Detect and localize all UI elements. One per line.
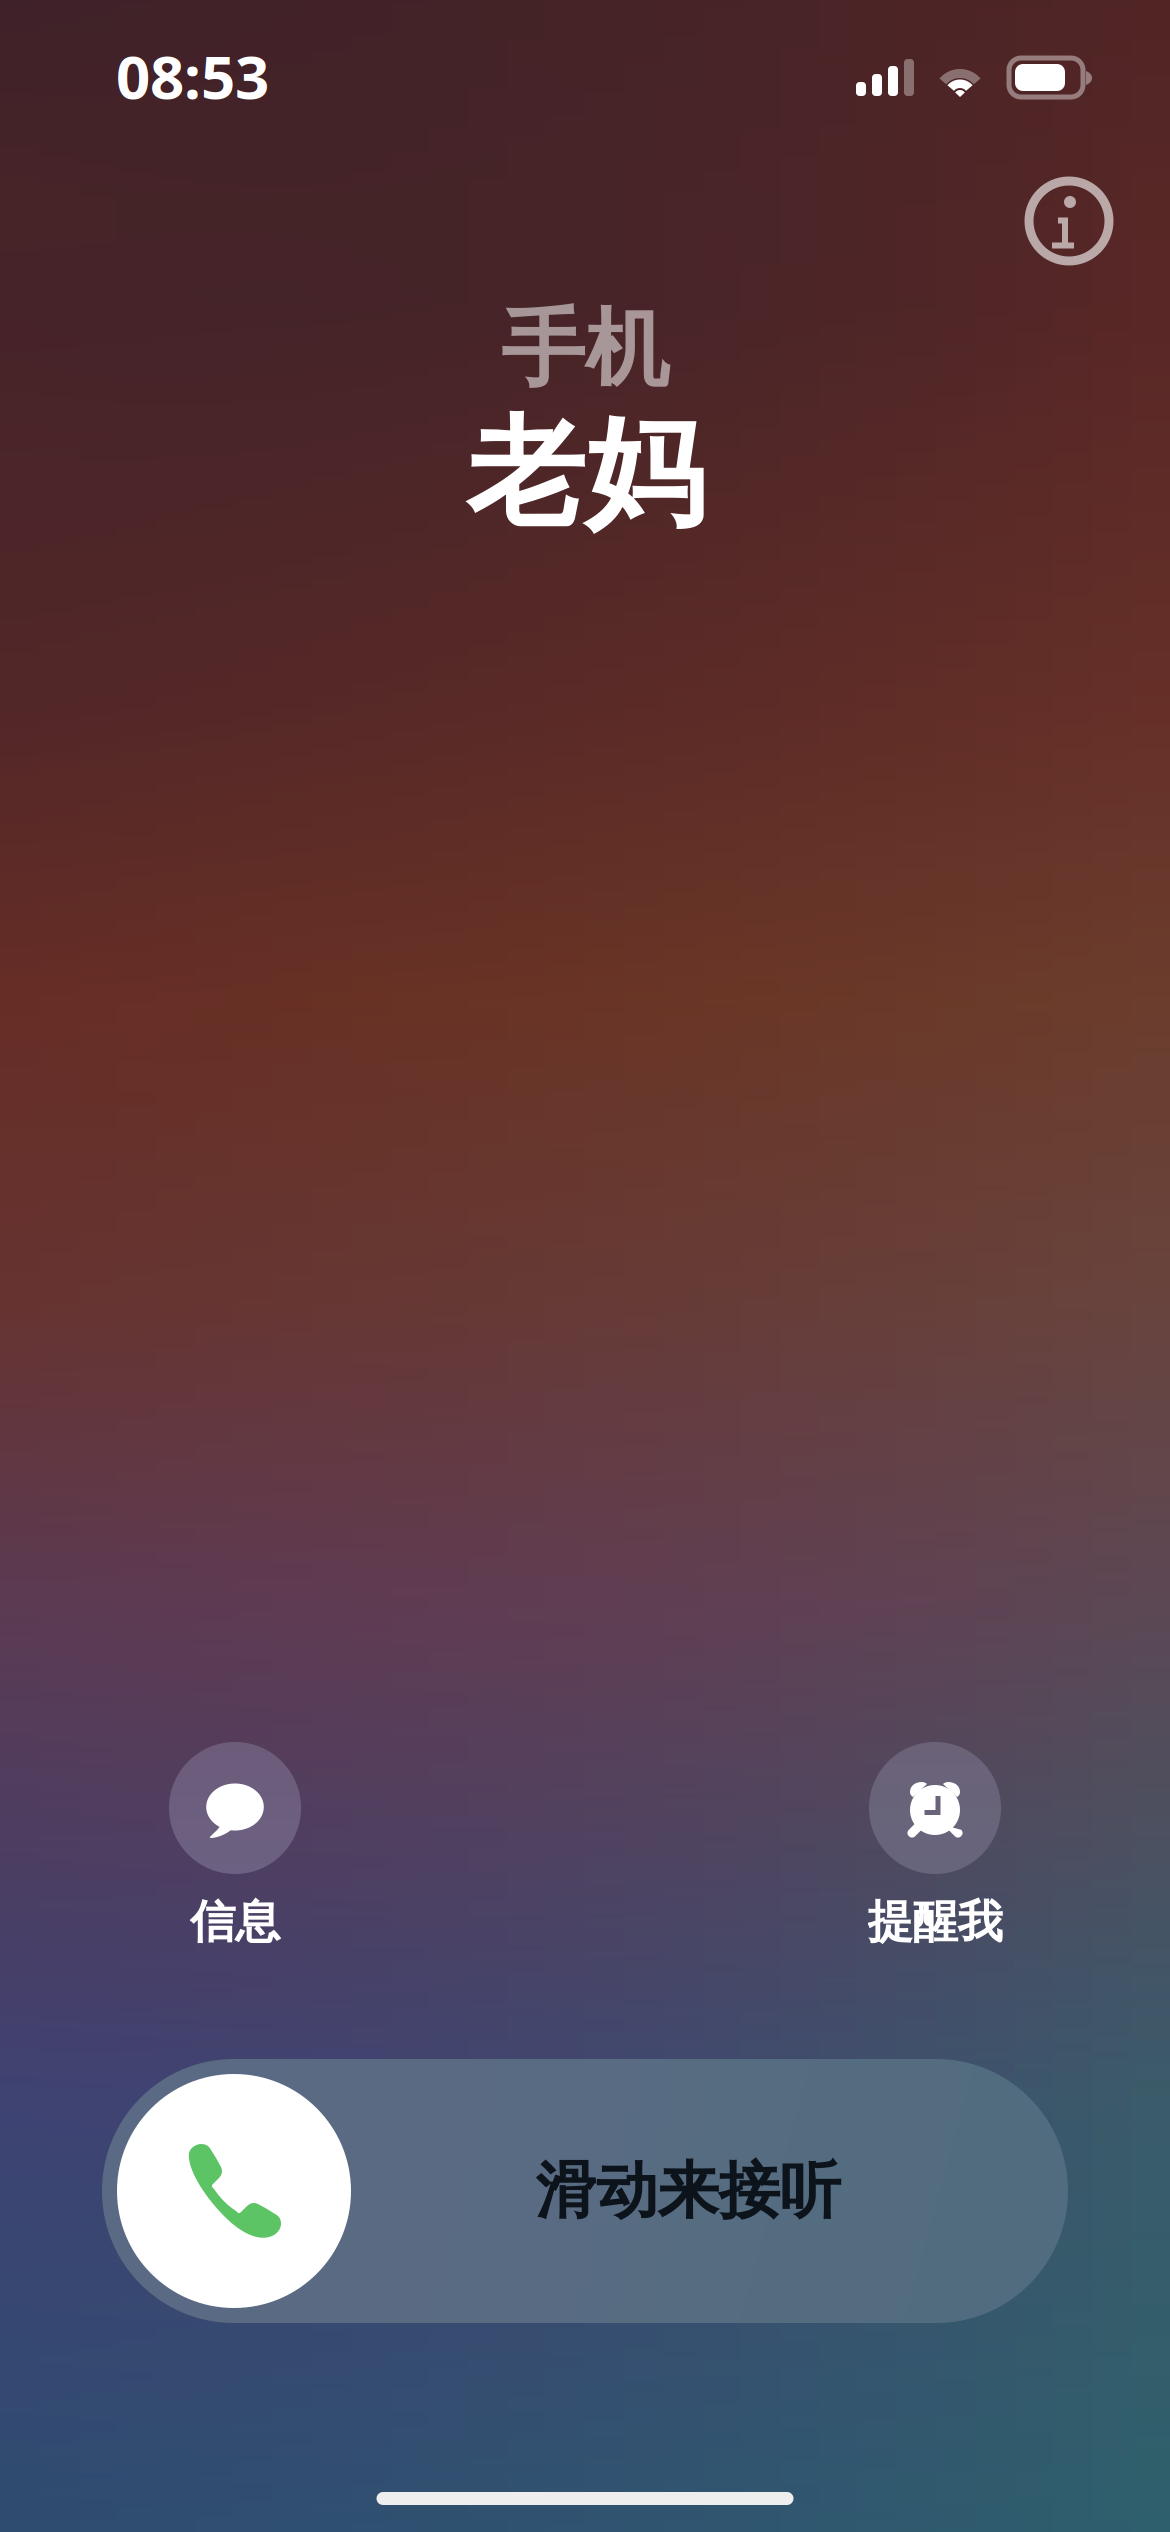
button[interactable]: Message: [105, 1742, 365, 1954]
staticText: 老妈: [466, 401, 704, 547]
staticText: 滑动来接听: [535, 2153, 840, 2229]
button[interactable]: Call info: [1024, 176, 1114, 266]
button[interactable]: Slide to answer: [102, 2059, 1068, 2323]
staticText: 提醒我: [867, 1894, 1002, 1950]
staticText: 信息: [190, 1894, 280, 1950]
staticText: 08:53: [116, 36, 269, 116]
button[interactable]: Remind Me: [805, 1742, 1065, 1954]
staticText: 手机: [501, 297, 669, 401]
